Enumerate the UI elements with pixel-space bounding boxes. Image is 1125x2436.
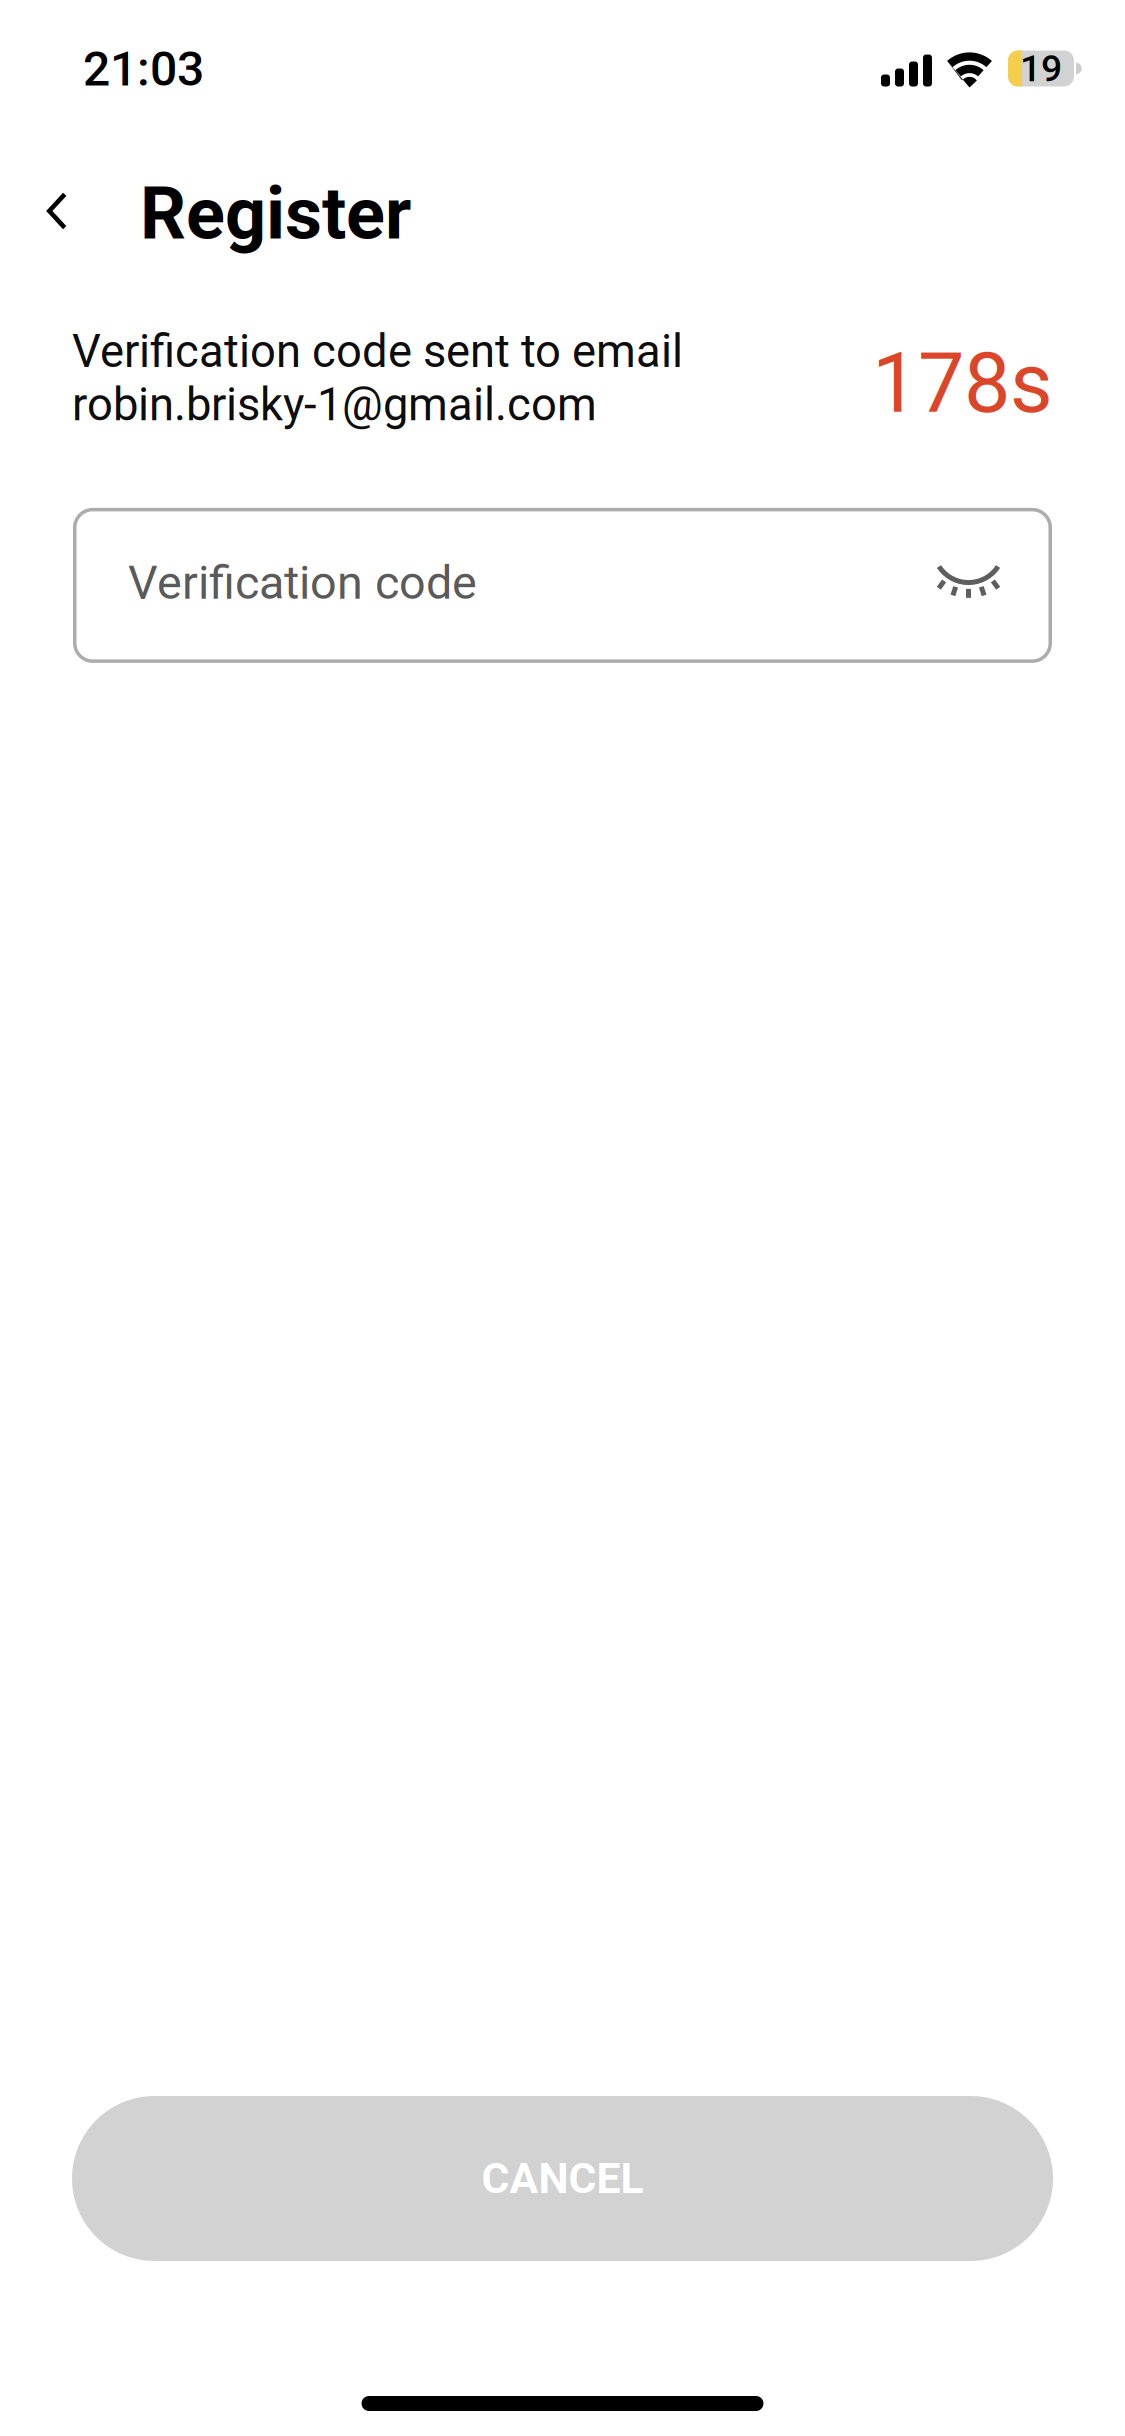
staticText: CANCEL bbox=[481, 2153, 643, 2203]
staticText: 178s bbox=[872, 335, 1053, 432]
staticText: Verification code sent to email robin.br… bbox=[72, 325, 683, 431]
staticText: Register bbox=[140, 172, 411, 256]
staticText: Verification code bbox=[128, 555, 477, 610]
button[interactable]: CANCEL bbox=[72, 2096, 1053, 2261]
button[interactable]: Show verification code bbox=[919, 530, 1019, 640]
button[interactable]: Verification code bbox=[73, 508, 1052, 663]
staticText: 21:03 bbox=[83, 41, 204, 97]
button[interactable]: Back bbox=[11, 165, 103, 269]
staticText: 19 bbox=[1020, 47, 1062, 90]
